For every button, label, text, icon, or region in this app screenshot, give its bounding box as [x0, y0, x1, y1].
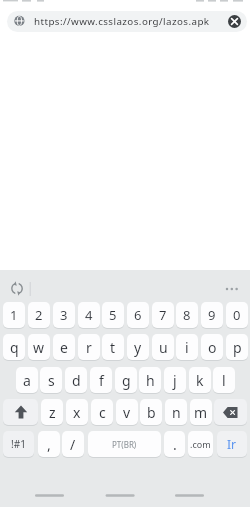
button[interactable]: PT(BR) [88, 431, 161, 457]
staticText: , [47, 435, 51, 454]
button[interactable]: https://www.csslazos.org/lazos.apk [7, 11, 247, 32]
staticText: t [110, 338, 116, 357]
button[interactable]: m [190, 399, 212, 425]
staticText: . [173, 435, 177, 454]
button[interactable]: 6 [127, 302, 149, 328]
button[interactable]: a [16, 367, 38, 393]
button[interactable]: 5 [102, 302, 124, 328]
button[interactable]: n [165, 399, 187, 425]
staticText: x [73, 403, 81, 422]
button[interactable]: l [213, 367, 235, 393]
staticText: 0 [233, 306, 241, 324]
staticText: i [185, 338, 189, 357]
button[interactable]: . [164, 431, 185, 457]
button[interactable]: 0 [226, 302, 248, 328]
staticText: 2 [35, 306, 43, 324]
button[interactable] [214, 399, 247, 425]
staticText: 4 [85, 306, 93, 324]
button[interactable]: d [65, 367, 87, 393]
staticText: h [146, 371, 155, 390]
staticText: f [99, 371, 104, 390]
staticText: y [134, 338, 142, 357]
staticText: a [23, 371, 31, 390]
staticText: u [159, 338, 168, 357]
button[interactable]: t [102, 334, 124, 360]
button[interactable]: 1 [3, 302, 25, 328]
staticText: m [194, 403, 208, 422]
staticText: 5 [109, 306, 117, 324]
staticText: 8 [183, 306, 191, 324]
staticText: c [99, 403, 106, 422]
staticText: g [122, 371, 131, 390]
staticText: w [33, 338, 45, 357]
staticText: !#1 [11, 437, 26, 451]
staticText: r [86, 338, 92, 357]
button[interactable]: 7 [152, 302, 174, 328]
button[interactable]: 4 [78, 302, 100, 328]
button[interactable]: 2 [28, 302, 50, 328]
button[interactable]: x [66, 399, 88, 425]
staticText: j [173, 371, 177, 390]
staticText: o [208, 338, 217, 357]
staticText: n [172, 403, 181, 422]
button[interactable]: z [41, 399, 63, 425]
button[interactable]: 8 [176, 302, 198, 328]
button[interactable]: 3 [53, 302, 75, 328]
staticText: 3 [60, 306, 68, 324]
button[interactable]: !#1 [3, 431, 34, 457]
button[interactable]: f [90, 367, 112, 393]
button[interactable]: Ir [217, 431, 247, 457]
button[interactable]: e [53, 334, 75, 360]
staticText: .com [190, 438, 211, 450]
staticText: s [48, 371, 55, 390]
staticText: p [233, 338, 242, 357]
staticText: 9 [208, 306, 216, 324]
button[interactable]: r [78, 334, 100, 360]
button[interactable]: y [127, 334, 149, 360]
button[interactable]: w [28, 334, 50, 360]
button[interactable]: g [115, 367, 137, 393]
button[interactable]: c [91, 399, 113, 425]
staticText: PT(BR) [112, 439, 137, 450]
button[interactable]: p [226, 334, 248, 360]
staticText: z [49, 403, 56, 422]
staticText: 1 [10, 306, 18, 324]
staticText: 6 [134, 306, 142, 324]
staticText: k [196, 371, 204, 390]
button[interactable]: i [176, 334, 198, 360]
button[interactable]: s [40, 367, 62, 393]
button[interactable]: u [152, 334, 174, 360]
staticText: Ir [227, 436, 237, 452]
staticText: / [70, 435, 76, 454]
button[interactable] [3, 399, 38, 425]
button[interactable]: 9 [201, 302, 223, 328]
staticText: v [123, 403, 131, 422]
staticText: https://www.csslazos.org/lazos.apk [34, 15, 210, 28]
button[interactable]: q [3, 334, 25, 360]
button[interactable]: j [164, 367, 186, 393]
staticText: 7 [159, 306, 167, 324]
button[interactable]: k [189, 367, 211, 393]
staticText: l [222, 371, 226, 390]
staticText: e [60, 338, 68, 357]
staticText: b [147, 403, 156, 422]
staticText: q [10, 338, 19, 357]
button[interactable]: h [139, 367, 161, 393]
button[interactable]: .com [188, 431, 213, 457]
button[interactable]: v [116, 399, 138, 425]
button[interactable]: , [38, 431, 60, 457]
button[interactable]: o [201, 334, 223, 360]
staticText: d [72, 371, 81, 390]
button[interactable]: / [62, 431, 84, 457]
button[interactable] [228, 15, 241, 28]
button[interactable]: b [140, 399, 162, 425]
